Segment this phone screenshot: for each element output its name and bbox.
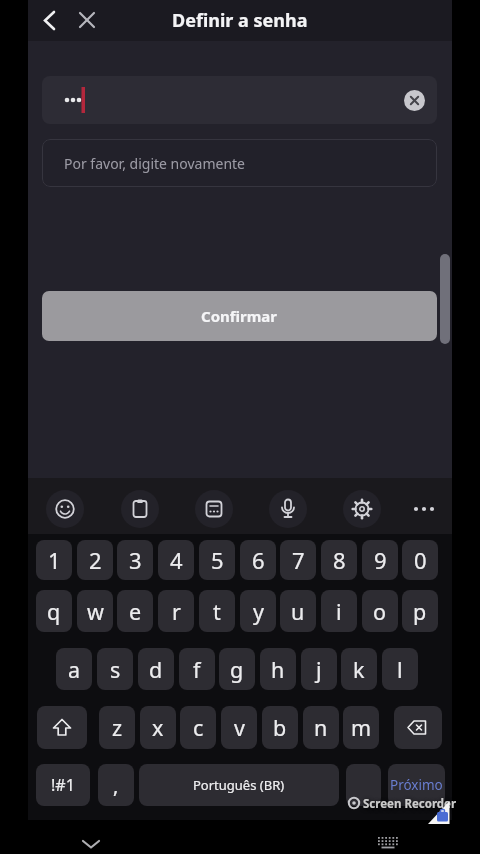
button[interactable]: a (56, 648, 92, 690)
staticText: d (149, 655, 163, 684)
staticText: Português (BR) (193, 776, 285, 794)
button[interactable]: w (77, 590, 113, 632)
staticText: n (314, 713, 328, 742)
staticText: f (193, 655, 201, 684)
button[interactable] (121, 490, 159, 528)
staticText: c (193, 713, 204, 742)
staticText: 4 (170, 545, 183, 575)
staticText: Definir a senha (172, 8, 308, 33)
staticText: v (234, 713, 245, 742)
staticText: k (353, 655, 365, 684)
button[interactable] (37, 706, 87, 749)
button[interactable] (394, 706, 442, 749)
button[interactable]: r (158, 590, 194, 632)
button[interactable]: Por favor, digite novamente (42, 139, 437, 187)
button[interactable]: 3 (117, 540, 153, 580)
button[interactable] (195, 490, 233, 528)
button[interactable]: s (97, 648, 133, 690)
button[interactable]: !#1 (36, 764, 90, 806)
button[interactable] (46, 490, 84, 528)
button[interactable]: x (140, 706, 176, 749)
button[interactable]: q (36, 590, 72, 632)
button[interactable]: y (240, 590, 276, 632)
staticText: Confirmar (201, 306, 278, 326)
button[interactable] (405, 490, 443, 528)
button[interactable]: Próximo (388, 764, 445, 806)
button[interactable]: h (260, 648, 296, 690)
staticText: x (152, 713, 164, 742)
staticText: 0 (414, 545, 427, 575)
staticText: 1 (48, 545, 61, 575)
staticText: , (113, 772, 119, 799)
button[interactable]: 0 (402, 540, 438, 580)
button[interactable]: v (221, 706, 257, 749)
staticText: b (273, 713, 287, 742)
button[interactable] (42, 76, 437, 124)
button[interactable]: u (280, 590, 316, 632)
staticText: q (47, 597, 61, 626)
staticText: 7 (292, 545, 305, 575)
button[interactable]: l (382, 648, 418, 690)
button[interactable]: 5 (199, 540, 235, 580)
button[interactable]: o (362, 590, 398, 632)
staticText: l (397, 655, 403, 684)
button[interactable]: e (117, 590, 153, 632)
button[interactable] (70, 2, 104, 38)
staticText: Screen Recorder (363, 796, 457, 812)
staticText: a (68, 655, 81, 684)
staticText: Por favor, digite novamente (64, 154, 245, 173)
staticText: r (172, 597, 181, 626)
button[interactable]: Confirmar (42, 291, 437, 341)
button[interactable]: j (301, 648, 337, 690)
staticText: o (373, 597, 387, 626)
button[interactable]: 9 (362, 540, 398, 580)
staticText: 9 (374, 545, 387, 575)
staticText: t (213, 597, 221, 626)
button[interactable]: d (138, 648, 174, 690)
button[interactable]: c (180, 706, 216, 749)
button[interactable]: 7 (280, 540, 316, 580)
staticText: h (271, 655, 285, 684)
button[interactable]: p (402, 590, 438, 632)
button[interactable] (74, 830, 108, 854)
staticText: y (253, 597, 264, 626)
staticText: Próximo (390, 776, 443, 794)
staticText: g (230, 655, 244, 684)
button[interactable]: Português (BR) (139, 764, 339, 806)
button[interactable]: 1 (36, 540, 72, 580)
staticText: !#1 (51, 774, 75, 796)
button[interactable]: i (321, 590, 357, 632)
staticText: w (87, 597, 104, 626)
button[interactable]: 4 (158, 540, 194, 580)
staticText: i (336, 597, 342, 626)
button[interactable]: n (303, 706, 339, 749)
button[interactable]: 8 (321, 540, 357, 580)
button[interactable] (346, 764, 381, 806)
button[interactable]: z (99, 706, 135, 749)
button[interactable] (269, 490, 307, 528)
button[interactable]: t (199, 590, 235, 632)
button[interactable]: 2 (77, 540, 113, 580)
button[interactable]: b (262, 706, 298, 749)
staticText: 2 (89, 545, 102, 575)
staticText: 6 (252, 545, 265, 575)
staticText: 3 (129, 545, 142, 575)
button[interactable] (404, 90, 425, 111)
button[interactable] (343, 490, 381, 528)
button[interactable]: f (179, 648, 215, 690)
staticText: 5 (211, 545, 224, 575)
staticText: 8 (333, 545, 346, 575)
staticText: m (351, 713, 372, 742)
button[interactable]: 6 (240, 540, 276, 580)
staticText: p (413, 597, 427, 626)
button[interactable] (32, 2, 66, 38)
staticText: e (129, 597, 142, 626)
staticText: j (316, 655, 322, 684)
button[interactable]: g (219, 648, 255, 690)
button[interactable]: k (341, 648, 377, 690)
staticText: u (291, 597, 305, 626)
button[interactable] (372, 832, 404, 854)
button[interactable]: m (343, 706, 379, 749)
staticText: s (110, 655, 121, 684)
button[interactable]: , (98, 764, 134, 806)
